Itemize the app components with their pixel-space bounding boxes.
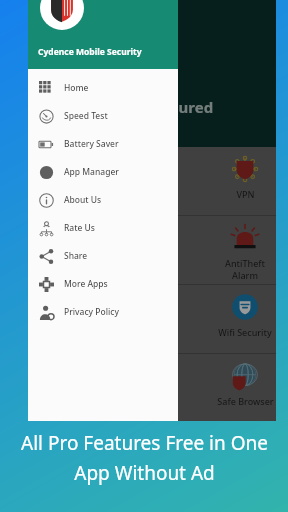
button[interactable]: Home: [28, 75, 178, 101]
button[interactable]: App Manager: [28, 159, 178, 185]
staticText: Wifi Security: [218, 326, 272, 338]
staticText: Battery Saver: [64, 138, 119, 150]
staticText: Safe Browser: [217, 395, 274, 407]
staticText: App Without Ad: [74, 460, 215, 486]
staticText: Share: [64, 250, 88, 262]
staticText: Your Device is Secured: [46, 97, 214, 117]
button[interactable]: Battery Saver: [28, 131, 178, 157]
button[interactable]: Rate Us: [28, 215, 178, 241]
button[interactable]: Speed Test: [28, 103, 178, 129]
staticText: Rate Us: [64, 222, 95, 234]
button[interactable]: Wifi Security: [28, 285, 276, 353]
staticText: More Apps: [64, 278, 108, 290]
button[interactable]: AntiTheft Alarm: [28, 216, 276, 284]
button[interactable]: Safe Browser: [28, 354, 276, 421]
staticText: About Us: [64, 194, 102, 206]
button[interactable]: VPN: [28, 147, 276, 215]
button[interactable]: Share: [28, 243, 178, 269]
staticText: App Manager: [64, 166, 119, 178]
staticText: All Pro Features Free in One: [21, 430, 268, 456]
staticText: Cydence Mobile Security: [38, 46, 142, 58]
button[interactable]: About Us: [28, 187, 178, 213]
staticText: Speed Test: [64, 110, 108, 122]
staticText: AntiTheft Alarm: [214, 257, 276, 281]
button[interactable]: More Apps: [28, 271, 178, 297]
staticText: Privacy Policy: [64, 306, 119, 318]
staticText: VPN: [236, 188, 255, 200]
button[interactable]: Privacy Policy: [28, 299, 178, 325]
staticText: Home: [64, 82, 89, 94]
